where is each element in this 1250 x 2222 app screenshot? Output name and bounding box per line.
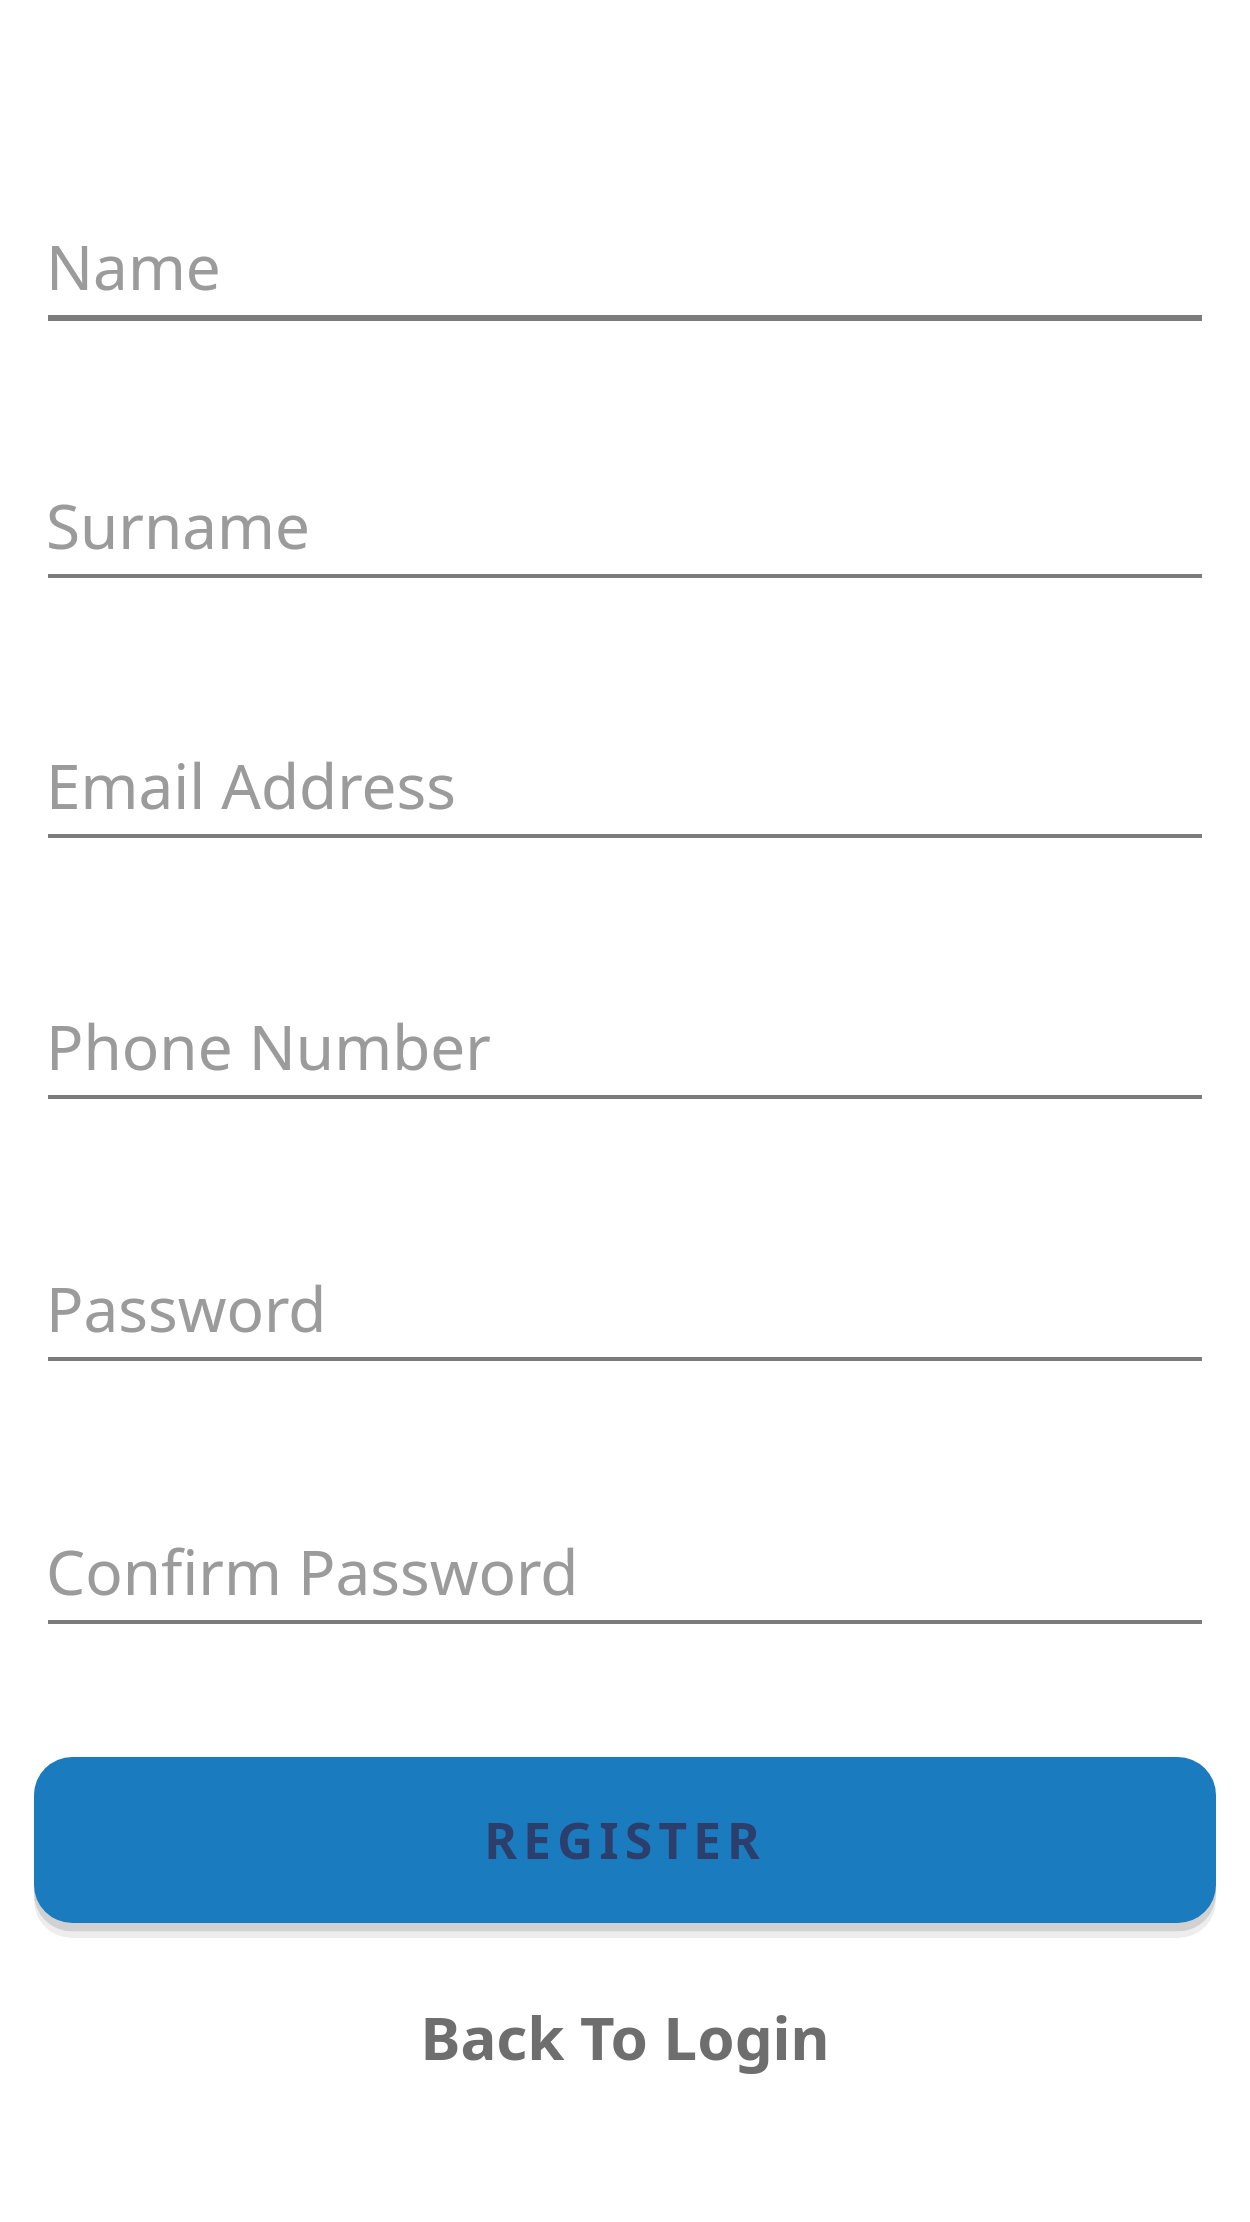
staticText: Surname: [46, 483, 310, 567]
staticText: Email Address: [46, 743, 456, 827]
button[interactable]: Email Address: [0, 729, 1250, 879]
staticText: Name: [46, 224, 221, 308]
button[interactable]: Surname: [0, 469, 1250, 619]
button[interactable]: Name: [0, 210, 1250, 360]
button[interactable]: Back To Login: [0, 1982, 1250, 2092]
button[interactable]: Confirm Password: [0, 1515, 1250, 1665]
button[interactable]: REGISTER: [34, 1757, 1216, 1923]
staticText: Phone Number: [46, 1004, 491, 1088]
staticText: Confirm Password: [46, 1529, 579, 1613]
staticText: Password: [46, 1266, 327, 1350]
staticText: Back To Login: [420, 1996, 830, 2078]
button[interactable]: Phone Number: [0, 990, 1250, 1140]
button[interactable]: Password: [0, 1252, 1250, 1402]
staticText: REGISTER: [484, 1806, 766, 1874]
